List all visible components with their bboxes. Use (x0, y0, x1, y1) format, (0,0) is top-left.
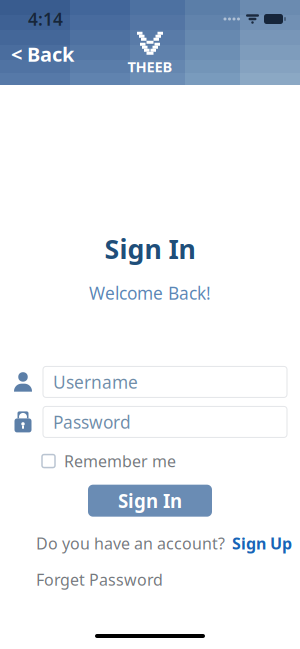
staticText: THEEB (127, 57, 172, 76)
button[interactable]: < Back (0, 34, 74, 74)
staticText: Do you have an account? (36, 533, 225, 554)
staticText: Sign In (118, 488, 182, 513)
button[interactable]: Sign In (88, 485, 212, 517)
staticText: Sign Up (232, 533, 292, 554)
staticText: Username (53, 370, 138, 393)
button[interactable]: Sign Up (232, 530, 292, 557)
staticText: Password (53, 410, 131, 433)
staticText: Remember me (64, 450, 176, 472)
button[interactable]: Remember me (42, 446, 176, 476)
button[interactable]: Username (43, 366, 287, 397)
button[interactable]: Password (43, 406, 287, 437)
staticText: Sign In (104, 231, 195, 266)
staticText: < Back (11, 41, 74, 67)
staticText: Welcome Back! (89, 281, 211, 304)
staticText: Forget Password (36, 569, 163, 590)
staticText: 4:14 (28, 7, 63, 30)
button[interactable]: Forget Password (36, 566, 163, 593)
